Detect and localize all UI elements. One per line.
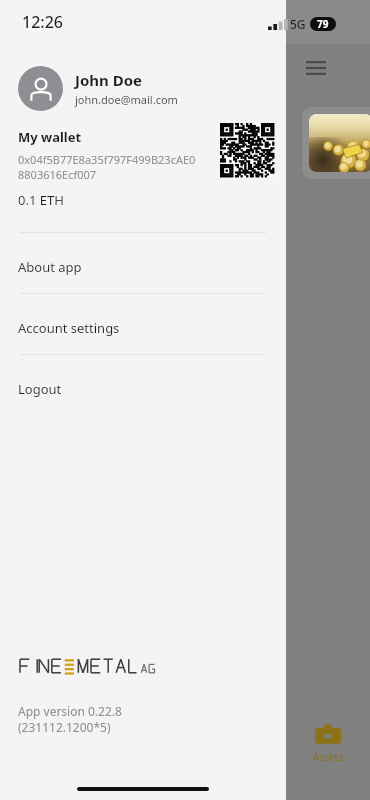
- staticText: (231112.1200*5): [18, 719, 111, 735]
- staticText: john.doe@mail.com: [75, 92, 178, 107]
- staticText: 0x04f5B77E8a35f797F499B23cAE0: [18, 152, 196, 167]
- button[interactable]: Account settings: [0, 316, 286, 340]
- staticText: 5G: [290, 16, 306, 32]
- button[interactable]: John Doe: [18, 66, 268, 111]
- button[interactable]: Logout: [0, 377, 286, 401]
- staticText: 79: [317, 17, 329, 31]
- button[interactable]: Open menu: [300, 52, 332, 84]
- button[interactable]: Assets: [286, 724, 370, 764]
- button[interactable]: About app: [0, 255, 286, 279]
- staticText: Logout: [18, 380, 62, 398]
- staticText: 8803616Ecf007: [18, 167, 97, 182]
- staticText: 12:26: [22, 11, 63, 33]
- staticText: App version 0.22.8: [18, 703, 122, 719]
- staticText: My wallet: [18, 128, 82, 146]
- staticText: Assets: [313, 750, 344, 764]
- staticText: Account settings: [18, 319, 120, 337]
- button[interactable]: [302, 107, 370, 179]
- staticText: 0.1 ETH: [18, 191, 64, 209]
- staticText: About app: [18, 258, 82, 276]
- staticText: John Doe: [75, 70, 143, 90]
